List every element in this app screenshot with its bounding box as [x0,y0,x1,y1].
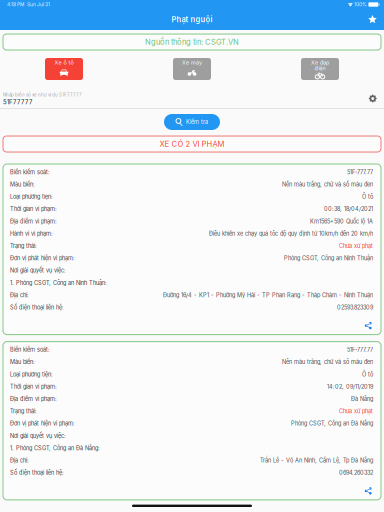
staticText: Màu biển: [10,181,35,188]
staticText: Thời gian vi phạm: [10,383,57,390]
staticText: Sun Jul 31 [24,2,50,7]
staticText: 51F-777.77 [347,346,373,353]
staticText: Số điện thoại liên hệ: [10,469,64,476]
staticText: Trạng thái: [10,243,37,249]
staticText: Nguồn thông tin: CSGT.VN [145,37,239,47]
staticText: XE CÓ 2 VI PHẠM [159,139,224,149]
button[interactable]: Xe đạp [301,58,339,80]
staticText: Xe ô tô [54,59,73,66]
staticText: Km1565+590 Quốc lộ 1A [310,218,373,225]
staticText: 51F-777.77 [347,169,373,176]
button[interactable]: Xe máy [173,58,211,80]
staticText: Trần Lê - Võ An Ninh, Cẩm Lệ, Tp Đà Nẵng [260,457,373,464]
button[interactable]: Share [364,484,373,495]
staticText: Nhập biển số xe như ví dụ 51F77777 [3,92,81,97]
staticText: Nơi giải quyết vụ việc: [10,432,66,439]
staticText: Nền màu trắng, chữ và số màu đen [282,359,373,365]
staticText: Địa điểm vi phạm: [10,218,57,225]
staticText: 00:38, 18/04/2021 [324,206,373,212]
staticText: Số điện thoại liên hệ: [10,304,64,311]
staticText: Xe máy [182,59,202,66]
staticText: Chưa xử phạt [339,243,373,249]
staticText: Hành vi vi phạm: [10,230,53,237]
staticText: 4:18 PM [7,2,24,7]
staticText: Đơn vị phát hiện vi phạm: [10,420,75,427]
staticText: Điều khiển xe chạy quá tốc độ quy định t… [209,230,373,237]
staticText: 1. Phòng CSGT, Công an Đà Nẵng: [10,445,100,452]
button[interactable]: Xe ô tô [45,58,83,80]
staticText: Ô tô [362,371,373,378]
staticText: Địa chỉ: [10,292,29,299]
staticText: Chưa xử phạt [339,408,373,415]
staticText: Kiểm tra [186,119,208,125]
staticText: 51F77777 [3,98,32,106]
staticText: 14:02, 09/11/2019 [327,383,373,390]
staticText: Nơi giải quyết vụ việc: [10,267,66,274]
staticText: Biển kiểm soát: [10,346,50,353]
staticText: Ô tô [362,193,373,200]
staticText: Đường 16/4 - KP1 - Phường Mỹ Hải - TP Ph… [163,292,373,299]
staticText: 100% [353,2,367,7]
button[interactable]: Favorite [368,15,384,24]
staticText: Địa chỉ: [10,457,29,464]
staticText: Phòng CSGT, Công an Ninh Thuận [284,255,373,262]
staticText: Biển kiểm soát: [10,169,50,176]
staticText: điện [314,65,325,72]
staticText: Thời gian vi phạm: [10,206,57,212]
staticText: 0694.260332 [339,469,373,476]
staticText: Trạng thái: [10,408,37,415]
staticText: Đà Nẵng [351,396,373,402]
staticText: Màu biển: [10,359,35,365]
staticText: Đơn vị phát hiện vi phạm: [10,255,75,262]
staticText: 1. Phòng CSGT, Công an Ninh Thuận: [10,279,107,286]
button[interactable]: Share [364,319,373,329]
staticText: Xe đạp [311,59,329,66]
staticText: Phạt nguội [171,15,212,24]
staticText: Nền màu trắng, chữ và số màu đen [282,181,373,188]
staticText: Loại phương tiện: [10,193,53,200]
staticText: Địa điểm vi phạm: [10,396,57,402]
staticText: Loại phương tiện: [10,371,53,378]
button[interactable]: Settings [368,94,377,106]
button[interactable]: Kiểm tra [164,114,220,130]
staticText: 02593.823309 [337,304,373,311]
staticText: Phòng CSGT, Công an Đà Nẵng [291,420,373,427]
